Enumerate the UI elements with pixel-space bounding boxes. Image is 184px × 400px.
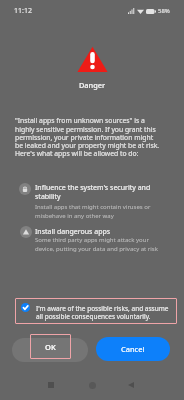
staticText: "Install apps from unknown sources" is a… (15, 116, 162, 158)
staticText: Influence the system's security and stab… (35, 183, 169, 201)
staticText: OK (45, 342, 56, 352)
staticText: Danger (0, 80, 184, 90)
button[interactable]: Cancel (96, 337, 170, 361)
button[interactable]: I'm aware of the possible risks, and ass… (15, 298, 177, 324)
button[interactable]: Home (82, 375, 102, 395)
staticText: 11:12 (14, 6, 32, 16)
button[interactable]: Back (121, 375, 141, 395)
staticText: Some third party apps might attack your … (35, 236, 159, 252)
staticText: Install apps that might contain viruses … (35, 203, 159, 219)
staticText: Install dangerous apps (35, 227, 175, 237)
button[interactable] (12, 338, 88, 362)
staticText: Cancel (121, 344, 145, 354)
button[interactable]: Recents (41, 375, 61, 395)
staticText: I'm aware of the possible risks, and ass… (36, 304, 176, 321)
staticText: 58% (158, 7, 170, 15)
